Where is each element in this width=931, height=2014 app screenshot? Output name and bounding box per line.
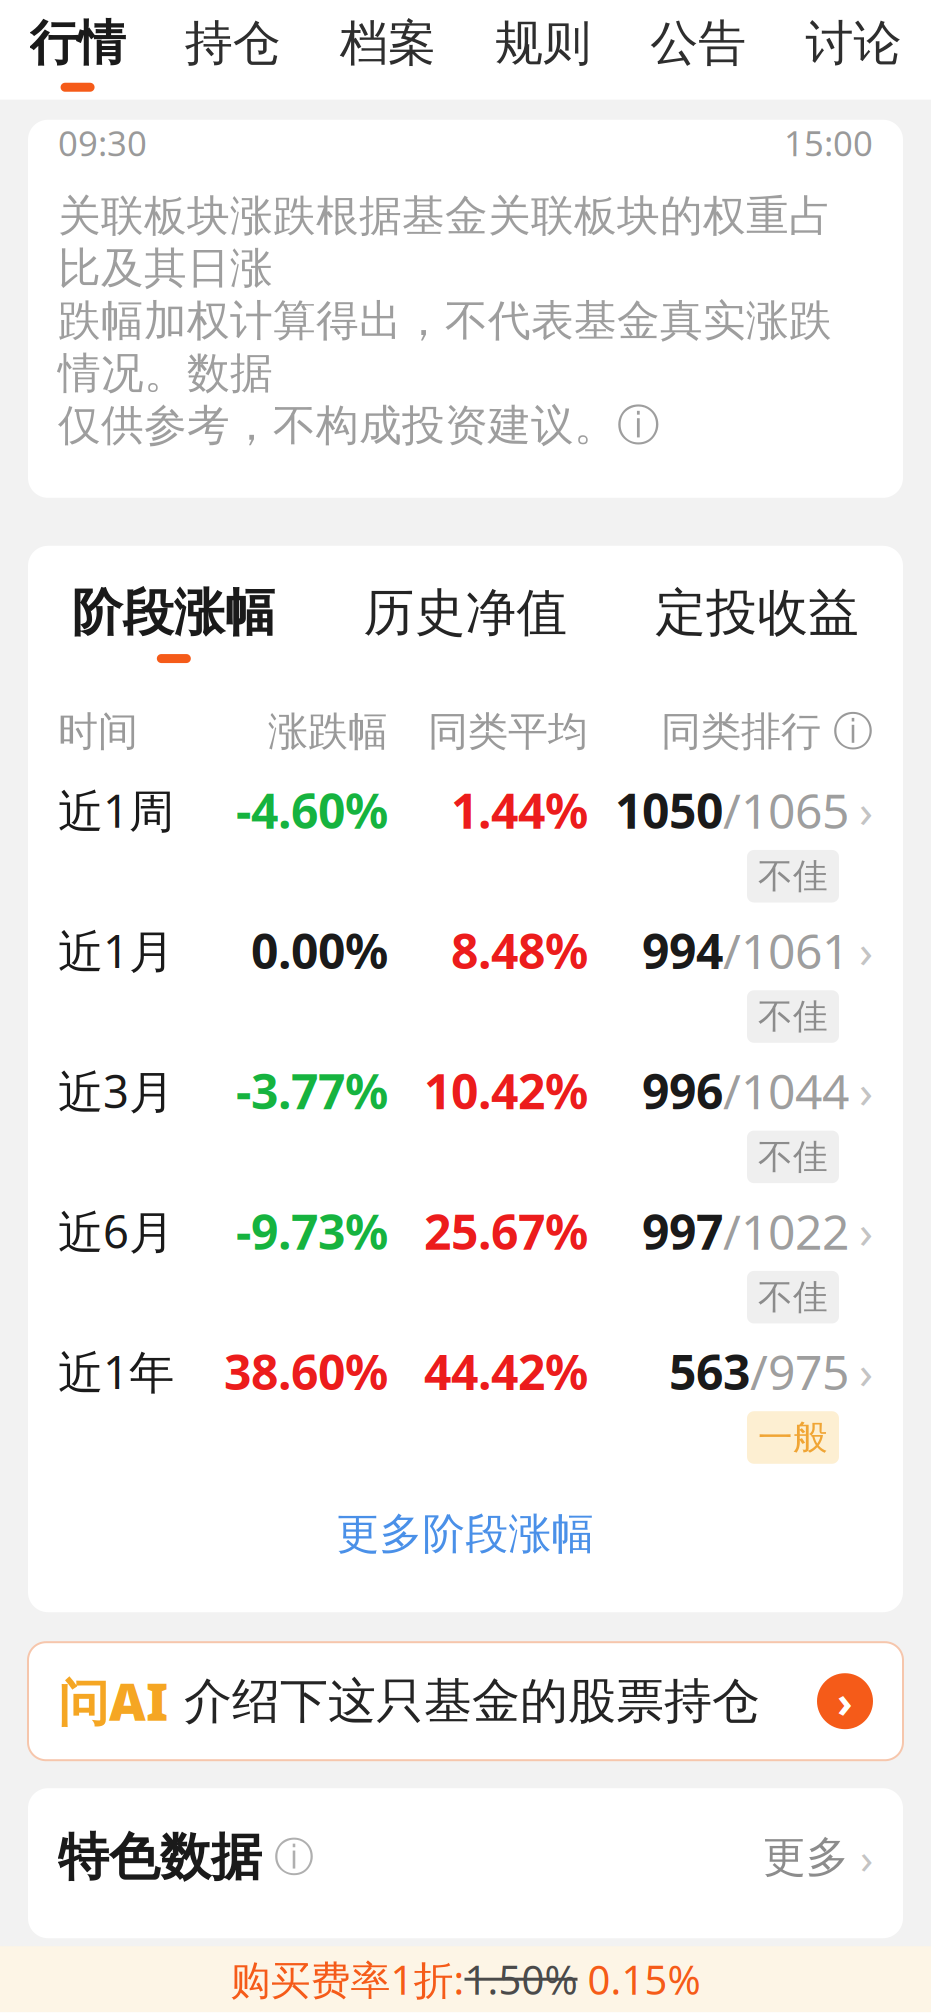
- staticText: -4.60%: [236, 778, 388, 842]
- staticText: 更多: [763, 1831, 849, 1883]
- staticText: 996: [642, 1059, 723, 1122]
- staticText: -3.77%: [236, 1059, 388, 1122]
- staticText: /1044: [723, 1059, 849, 1122]
- button[interactable]: 规则: [465, 0, 621, 100]
- staticText: 规则: [495, 14, 591, 73]
- staticText: 不佳: [758, 1136, 828, 1178]
- button[interactable]: 问AI: [0, 1642, 931, 1760]
- button[interactable]: 特色数据: [0, 1788, 931, 1938]
- staticText: ›: [849, 1829, 873, 1886]
- staticText: 同类平均: [428, 707, 588, 756]
- button[interactable]: 讨论: [776, 0, 931, 100]
- button[interactable]: 历史净值: [320, 582, 611, 663]
- staticText: 不佳: [758, 995, 828, 1038]
- staticText: 公告: [650, 14, 746, 73]
- staticText: ›: [859, 920, 873, 980]
- staticText: 定投收益: [655, 582, 859, 644]
- button[interactable]: 更多阶段涨幅: [28, 1472, 903, 1596]
- staticText: 行情: [30, 14, 126, 73]
- staticText: 阶段涨幅: [72, 582, 276, 644]
- staticText: /975: [750, 1339, 849, 1403]
- staticText: ›: [837, 1673, 853, 1730]
- button[interactable]: 近1年: [28, 1331, 903, 1472]
- staticText: /1022: [723, 1199, 849, 1263]
- staticText: 不佳: [758, 855, 828, 897]
- staticText: 档案: [340, 14, 436, 73]
- staticText: 1.44%: [451, 778, 588, 842]
- staticText: 25.67%: [424, 1199, 588, 1263]
- staticText: 涨跌幅: [268, 707, 388, 756]
- button[interactable]: 近1周: [28, 770, 903, 910]
- button[interactable]: 近3月: [28, 1051, 903, 1191]
- staticText: 介绍下这只基金的股票持仓: [184, 1672, 760, 1731]
- staticText: 近6月: [58, 1201, 174, 1261]
- staticText: 0.15%: [577, 1953, 700, 2006]
- staticText: 特色数据: [58, 1826, 262, 1888]
- staticText: 不佳: [758, 1276, 828, 1318]
- staticText: 问AI: [58, 1668, 168, 1735]
- staticText: 一般: [758, 1416, 828, 1459]
- staticText: 10.42%: [424, 1059, 588, 1122]
- staticText: ›: [859, 1341, 873, 1401]
- staticText: 44.42%: [424, 1339, 588, 1403]
- staticText: 近1周: [58, 780, 174, 840]
- staticText: /1065: [723, 778, 849, 842]
- staticText: 8.48%: [451, 918, 588, 982]
- staticText: 38.60%: [224, 1339, 388, 1403]
- staticText: 563: [669, 1339, 750, 1403]
- staticText: 更多阶段涨幅: [336, 1508, 594, 1560]
- staticText: 同类排行 ⓘ: [661, 707, 873, 756]
- staticText: 994: [642, 918, 723, 982]
- staticText: ›: [859, 1201, 873, 1261]
- staticText: 时间: [58, 707, 138, 756]
- staticText: 持仓: [185, 14, 281, 73]
- staticText: -9.73%: [236, 1199, 388, 1263]
- staticText: 15:00: [784, 120, 873, 166]
- button[interactable]: 阶段涨幅: [28, 582, 320, 663]
- button[interactable]: 定投收益: [611, 582, 903, 663]
- staticText: 近3月: [58, 1061, 174, 1121]
- staticText: 历史净值: [363, 582, 567, 644]
- staticText: ›: [859, 780, 873, 840]
- button[interactable]: 持仓: [155, 0, 310, 100]
- button[interactable]: 行情: [0, 0, 155, 100]
- button[interactable]: 档案: [310, 0, 465, 100]
- staticText: 1.50%: [464, 1953, 577, 2006]
- staticText: 关联板块涨跌根据基金关联板块的权重占比及其日涨 跌幅加权计算得出，不代表基金真实…: [58, 190, 832, 452]
- staticText: ⓘ: [262, 1833, 314, 1882]
- staticText: 0.00%: [251, 918, 388, 982]
- staticText: 近1月: [58, 920, 174, 980]
- button[interactable]: 近6月: [28, 1191, 903, 1331]
- staticText: 近1年: [58, 1341, 174, 1401]
- button[interactable]: 公告: [621, 0, 776, 100]
- staticText: 购买费率1折:: [230, 1953, 464, 2006]
- staticText: 09:30: [58, 120, 147, 166]
- staticText: 1050: [615, 778, 723, 842]
- staticText: 讨论: [805, 14, 901, 73]
- staticText: ›: [859, 1061, 873, 1121]
- staticText: /1061: [723, 918, 849, 982]
- button[interactable]: 近1月: [28, 910, 903, 1051]
- staticText: 997: [642, 1199, 723, 1263]
